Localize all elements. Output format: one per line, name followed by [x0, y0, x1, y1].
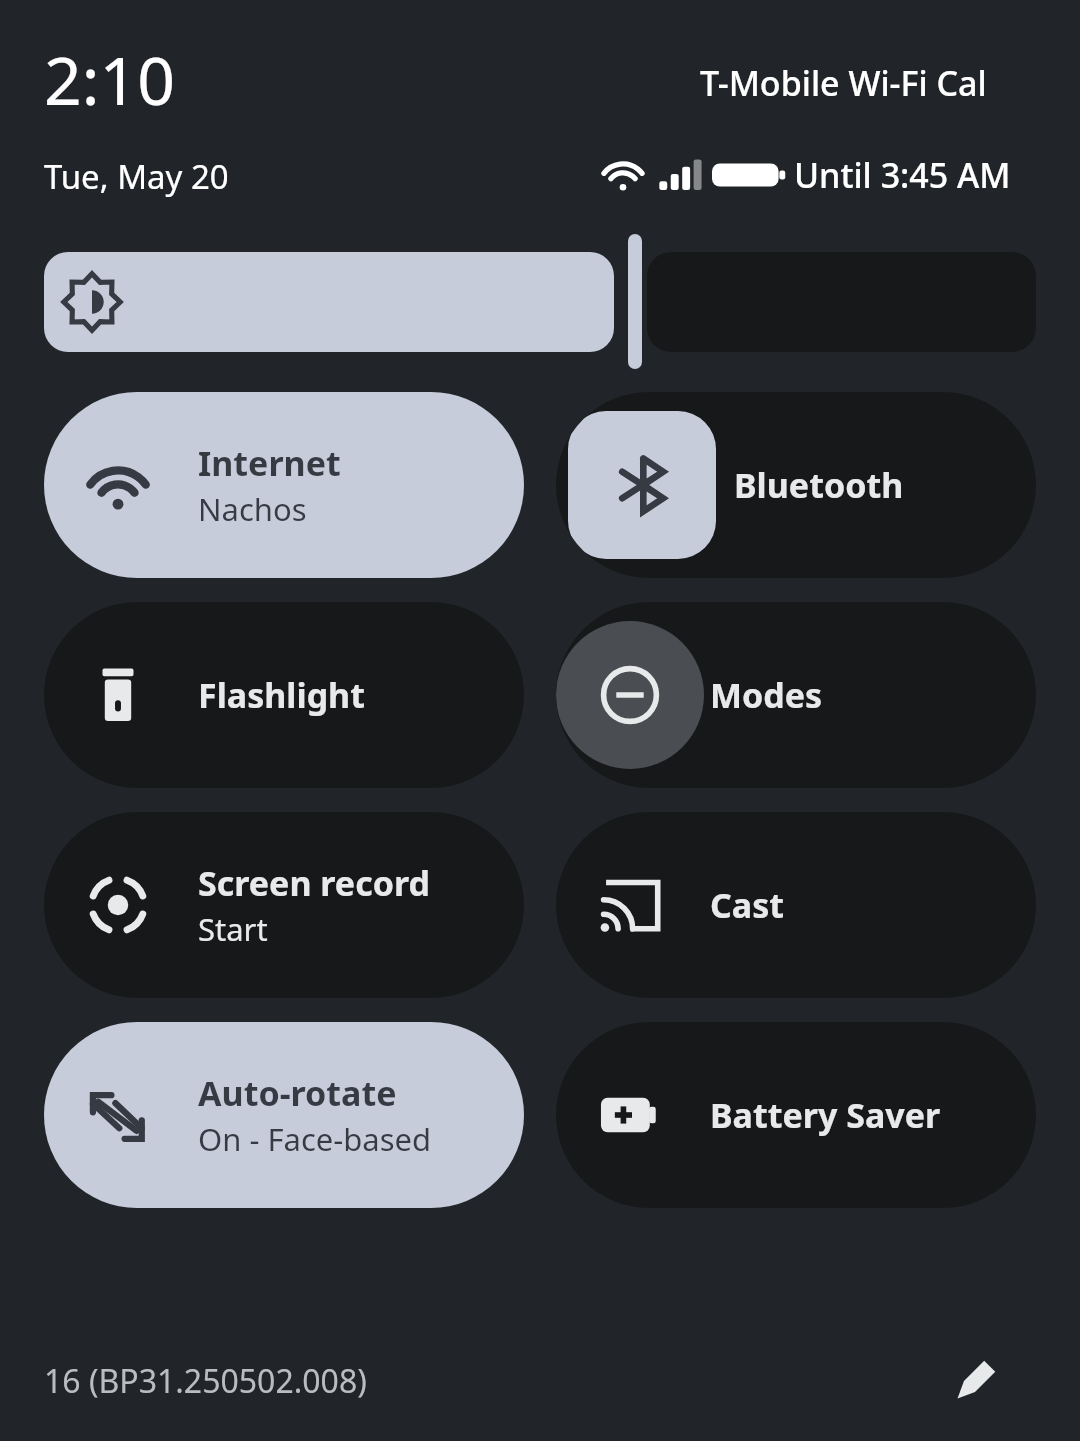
button[interactable]: Edit tiles	[940, 1346, 1010, 1416]
button[interactable]: Auto-rotate	[44, 1022, 524, 1208]
staticText: Modes	[710, 672, 823, 718]
staticText: Start	[198, 908, 268, 950]
staticText: Internet	[198, 440, 341, 486]
button[interactable]: Internet	[44, 392, 524, 578]
staticText: Until 3:45 AM	[794, 152, 1011, 198]
button[interactable]: Battery Saver	[556, 1022, 1036, 1208]
staticText: Battery Saver	[710, 1092, 941, 1138]
staticText: Tue, May 20	[44, 154, 229, 199]
button[interactable]: Modes	[556, 602, 1036, 788]
button[interactable]: Screen record	[44, 812, 524, 998]
staticText: Cast	[710, 882, 785, 928]
button[interactable]: Cast	[556, 812, 1036, 998]
button[interactable]: Brightness	[44, 252, 614, 352]
button[interactable]: Flashlight	[44, 602, 524, 788]
staticText: Bluetooth	[734, 462, 904, 508]
staticText: Flashlight	[198, 672, 365, 718]
staticText: T-Mobile Wi-Fi Cal	[700, 60, 987, 106]
staticText: 2:10	[44, 34, 175, 124]
staticText: Nachos	[198, 488, 307, 530]
button[interactable]: Bluetooth	[556, 392, 1036, 578]
staticText: Screen record	[198, 860, 430, 906]
staticText: Auto-rotate	[198, 1070, 397, 1116]
staticText: 16 (BP31.250502.008)	[44, 1359, 367, 1403]
staticText: On - Face-based	[198, 1118, 432, 1160]
